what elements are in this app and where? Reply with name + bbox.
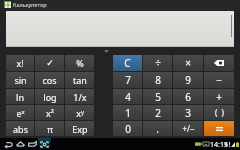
staticText: 5 (155, 90, 161, 104)
button[interactable]: tan (65, 72, 94, 88)
button[interactable]: sin (6, 72, 34, 88)
button[interactable]: Home (14, 139, 26, 149)
staticText: ( ) (215, 107, 224, 118)
staticText: x! (16, 57, 24, 69)
staticText: − (216, 73, 222, 87)
button[interactable]: Exp (65, 121, 94, 136)
button[interactable]: eˣ (6, 105, 34, 120)
staticText: xʸ (76, 107, 84, 119)
button[interactable]: 7 (113, 72, 142, 88)
button[interactable]: abs (6, 121, 34, 136)
staticText: 6 (185, 90, 191, 104)
staticText: 8 (155, 73, 161, 87)
button[interactable]: 8 (143, 72, 172, 88)
button[interactable]: . (143, 121, 172, 136)
staticText: 4 (125, 90, 131, 104)
button[interactable]: 2 (143, 105, 172, 120)
button[interactable]: 9 (173, 72, 203, 88)
staticText: . (156, 122, 159, 136)
staticText: sin (14, 74, 27, 86)
button[interactable]: % (65, 55, 94, 71)
staticText: 7 (125, 73, 131, 87)
staticText: Exp (72, 123, 88, 135)
button[interactable]: x² (35, 105, 64, 120)
button[interactable]: x! (6, 55, 34, 71)
button[interactable]: Back (2, 139, 14, 149)
button[interactable]: 0 (113, 121, 142, 136)
button[interactable]: 1/x (65, 89, 94, 104)
button[interactable]: π (35, 121, 64, 136)
staticText: + (216, 90, 222, 104)
button[interactable]: Equals (204, 121, 234, 136)
staticText: 3 (185, 106, 191, 120)
staticText: % (76, 57, 84, 69)
button[interactable]: log (35, 89, 64, 104)
button[interactable]: 5 (143, 89, 172, 104)
staticText: π (47, 123, 53, 135)
staticText: Калькулятор (13, 1, 47, 8)
button[interactable]: cos (35, 72, 64, 88)
staticText: 9 (185, 73, 191, 87)
button[interactable]: 4 (113, 89, 142, 104)
button[interactable]: +/− (173, 121, 203, 136)
button[interactable]: C (113, 55, 142, 71)
staticText: tan (73, 74, 87, 86)
button[interactable]: − (204, 72, 234, 88)
button[interactable]: ( ) (204, 105, 234, 120)
button[interactable]: ✓ (35, 55, 64, 71)
staticText: x² (46, 107, 54, 119)
button[interactable]: ÷ (143, 55, 172, 71)
button[interactable]: + (204, 89, 234, 104)
staticText: ln (16, 91, 24, 103)
button[interactable]: 3 (173, 105, 203, 120)
staticText: C (124, 56, 131, 70)
staticText: ✓ (46, 58, 54, 68)
staticText: 0 (125, 122, 131, 136)
button[interactable]: Recents (26, 139, 38, 149)
staticText: 1/x (73, 91, 87, 103)
staticText: +/− (182, 123, 195, 134)
button[interactable]: 1 (113, 105, 142, 120)
staticText: log (43, 91, 57, 103)
button[interactable]: ln (6, 89, 34, 104)
button[interactable]: Screenshot (38, 138, 51, 150)
staticText: 14:15 (210, 140, 228, 150)
staticText: eˣ (16, 107, 25, 119)
staticText: abs (13, 123, 28, 135)
staticText: ÷ (155, 56, 161, 70)
staticText: cos (42, 74, 57, 86)
staticText: 1 (125, 106, 131, 120)
button[interactable]: xʸ (65, 105, 94, 120)
staticText: 2 (155, 106, 161, 120)
button[interactable]: 6 (173, 89, 203, 104)
button[interactable]: × (173, 55, 203, 71)
staticText: × (185, 56, 191, 70)
button[interactable]: Backspace (204, 55, 234, 71)
